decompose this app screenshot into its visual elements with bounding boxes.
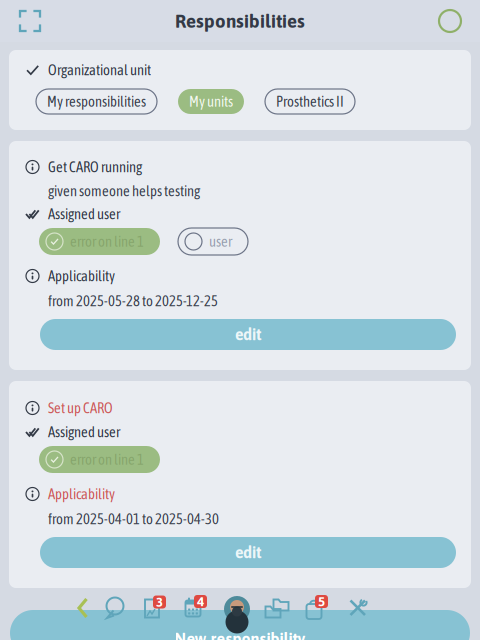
staticText: Assigned user (48, 424, 120, 440)
staticText: Applicability (48, 268, 115, 284)
button[interactable]: edit (40, 319, 456, 350)
button[interactable]: My responsibilities (36, 89, 157, 114)
staticText: Prosthetics II (276, 93, 344, 110)
button[interactable]: edit (40, 537, 456, 568)
staticText: Responsibilities (175, 10, 305, 32)
staticText: My responsibilities (47, 93, 146, 110)
staticText: edit (235, 543, 261, 562)
button[interactable]: Folders (265, 597, 290, 618)
button[interactable]: Documents (144, 595, 166, 618)
button[interactable]: Back (77, 598, 87, 618)
staticText: user (209, 233, 232, 250)
staticText: error on line 1 (70, 451, 144, 468)
staticText: Organizational unit (48, 62, 151, 78)
staticText: from 2025-05-28 to 2025-12-25 (48, 293, 218, 309)
staticText: error on line 1 (70, 233, 144, 250)
button[interactable]: My units (178, 89, 244, 114)
staticText: New responsibility (174, 630, 305, 640)
button[interactable]: Tools (348, 598, 367, 618)
staticText: 4 (197, 594, 204, 609)
staticText: My units (189, 93, 233, 110)
staticText: 3 (156, 594, 163, 610)
staticText: from 2025-04-01 to 2025-04-30 (48, 511, 219, 527)
button[interactable]: Prosthetics II (265, 89, 355, 114)
staticText: 5 (318, 594, 325, 609)
staticText: Applicability (48, 486, 115, 502)
staticText: Set up CARO (48, 400, 113, 416)
staticText: Get CARO running (48, 159, 142, 175)
button[interactable]: Orders (306, 595, 328, 619)
staticText: Assigned user (48, 206, 120, 222)
button[interactable]: Profile (224, 596, 250, 622)
button[interactable]: Calendar (185, 595, 207, 619)
button[interactable]: Status (428, 0, 472, 42)
button[interactable]: Full screen (8, 0, 52, 42)
button[interactable]: Messages (104, 597, 126, 619)
staticText: given someone helps testing (48, 183, 200, 199)
button[interactable]: New responsibility (10, 610, 470, 640)
staticText: edit (235, 325, 261, 344)
